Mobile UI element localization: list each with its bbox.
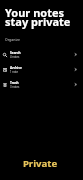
other: Open Archive bbox=[74, 68, 77, 71]
staticText: Your notes stay private bbox=[5, 5, 71, 30]
staticText: Archive bbox=[10, 66, 22, 70]
staticText: Organize bbox=[5, 37, 20, 42]
other: Open Search bbox=[74, 53, 77, 56]
staticText: Private bbox=[0, 157, 80, 170]
button[interactable]: Trash bbox=[0, 77, 83, 92]
staticText: 1 note bbox=[10, 70, 19, 74]
other: Open Trash bbox=[74, 83, 77, 86]
staticText: Trash bbox=[10, 81, 19, 85]
staticText: Search bbox=[10, 51, 21, 55]
button[interactable]: Search bbox=[0, 47, 83, 62]
staticText: 4 notes bbox=[10, 55, 20, 59]
button[interactable]: Archive bbox=[0, 62, 83, 77]
staticText: 3 notes bbox=[10, 85, 20, 89]
